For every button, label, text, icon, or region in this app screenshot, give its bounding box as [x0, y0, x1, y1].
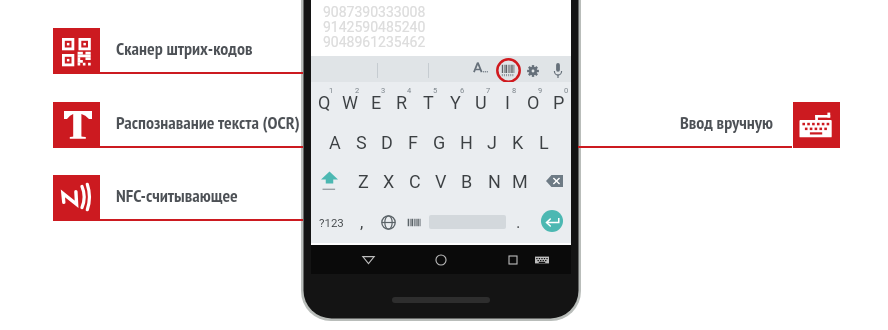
- button[interactable]: J: [479, 130, 505, 154]
- staticText: ,: [360, 212, 364, 232]
- button[interactable]: I: [494, 90, 520, 114]
- staticText: Сканер штрих-кодов: [116, 37, 253, 60]
- button[interactable]: A: [322, 130, 348, 154]
- button[interactable]: Q: [311, 90, 337, 114]
- button[interactable]: Z: [350, 169, 376, 193]
- button[interactable]: Scan barcode: [496, 58, 521, 83]
- other: NFC reader: [59, 181, 93, 215]
- staticText: A: [329, 132, 341, 153]
- staticText: T: [423, 92, 434, 113]
- button[interactable]: Backspace: [541, 169, 567, 193]
- button[interactable]: ?123: [316, 210, 346, 234]
- staticText: Q: [318, 92, 331, 113]
- staticText: G: [433, 132, 446, 153]
- staticText: 9087390333008: [323, 4, 426, 20]
- button[interactable]: Scan barcode: [403, 210, 425, 234]
- button[interactable]: R: [389, 90, 415, 114]
- staticText: Y: [450, 92, 461, 113]
- button[interactable]: Change language: [376, 210, 400, 234]
- staticText: R: [396, 92, 408, 113]
- staticText: 1: [329, 86, 334, 94]
- staticText: ?123: [319, 216, 344, 229]
- button[interactable]: ,: [351, 210, 373, 234]
- button[interactable]: V: [428, 169, 454, 193]
- staticText: C: [409, 171, 421, 192]
- staticText: Ввод вручную: [680, 111, 773, 134]
- staticText: V: [435, 171, 447, 192]
- button[interactable]: O: [520, 90, 546, 114]
- button[interactable]: M: [507, 169, 533, 193]
- staticText: E: [371, 92, 382, 113]
- staticText: 9048961235462: [323, 34, 426, 50]
- button[interactable]: X: [376, 169, 402, 193]
- button[interactable]: Shift: [316, 169, 342, 193]
- button[interactable]: K: [505, 130, 531, 154]
- button[interactable]: Language: [473, 62, 489, 73]
- button[interactable]: C: [402, 169, 428, 193]
- staticText: .: [516, 212, 521, 232]
- staticText: I: [505, 92, 510, 113]
- button[interactable]: E: [363, 90, 389, 114]
- button[interactable]: D: [374, 130, 400, 154]
- staticText: K: [512, 132, 524, 153]
- button[interactable]: F: [400, 130, 426, 154]
- button[interactable]: H: [453, 130, 479, 154]
- staticText: NFC-считывающее: [116, 184, 238, 207]
- button[interactable]: Text recognition OCR: [53, 102, 300, 148]
- button[interactable]: L: [531, 130, 557, 154]
- staticText: B: [461, 171, 473, 192]
- button[interactable]: Recents: [508, 255, 518, 265]
- button[interactable]: Barcode scanner: [53, 28, 253, 74]
- button[interactable]: NFC reader: [53, 175, 238, 221]
- button[interactable]: Voice input: [553, 63, 563, 78]
- staticText: U: [475, 92, 487, 113]
- button[interactable]: P: [546, 90, 572, 114]
- other: Manual input: [798, 110, 834, 140]
- staticText: 5: [433, 86, 438, 94]
- staticText: 6: [460, 86, 465, 94]
- button[interactable]: U: [468, 90, 494, 114]
- staticText: Z: [358, 171, 369, 192]
- button[interactable]: Hide keyboard: [535, 255, 549, 265]
- staticText: S: [356, 132, 367, 153]
- button[interactable]: Y: [442, 90, 468, 114]
- staticText: D: [381, 132, 393, 153]
- staticText: J: [487, 132, 497, 153]
- staticText: O: [527, 92, 540, 113]
- staticText: 7: [486, 86, 491, 94]
- button[interactable]: .: [507, 210, 529, 234]
- button[interactable]: N: [481, 169, 507, 193]
- staticText: P: [553, 92, 565, 113]
- staticText: 0: [564, 86, 569, 94]
- button[interactable]: W: [337, 90, 363, 114]
- button[interactable]: Back: [362, 254, 375, 266]
- staticText: W: [342, 92, 358, 113]
- other: Barcode scanner: [62, 38, 91, 67]
- staticText: 2: [355, 86, 360, 94]
- other: Text recognition OCR: [64, 111, 92, 139]
- button[interactable]: Home: [435, 254, 447, 266]
- staticText: L: [539, 132, 549, 153]
- staticText: 9: [538, 86, 543, 94]
- button[interactable]: Ввод вручную: [680, 102, 840, 148]
- button[interactable]: B: [454, 169, 480, 193]
- staticText: 3: [381, 86, 386, 94]
- button[interactable]: S: [348, 130, 374, 154]
- staticText: 4: [407, 86, 412, 94]
- button[interactable]: G: [426, 130, 452, 154]
- staticText: Распознавание текста (OCR): [116, 111, 300, 134]
- staticText: H: [460, 132, 473, 153]
- button[interactable]: T: [415, 90, 441, 114]
- staticText: 8: [512, 86, 517, 94]
- button[interactable]: Enter: [541, 210, 563, 232]
- staticText: N: [488, 171, 501, 192]
- staticText: X: [383, 171, 395, 192]
- staticText: 9142590485240: [323, 19, 426, 35]
- staticText: M: [512, 171, 528, 192]
- button[interactable]: Settings: [527, 65, 539, 77]
- staticText: F: [408, 132, 418, 153]
